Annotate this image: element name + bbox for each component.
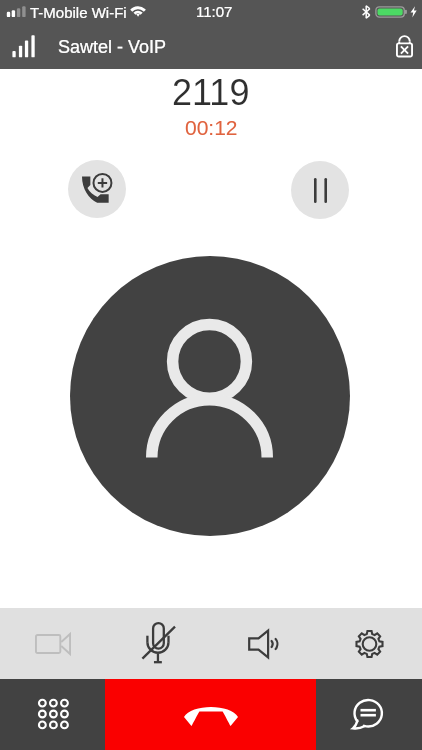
button[interactable]: Dialpad [0,679,105,750]
button[interactable]: Call not encrypted [384,26,422,66]
staticText: 11:07 [196,3,233,20]
button[interactable]: Speaker [210,608,316,679]
button[interactable]: End call [105,679,316,750]
staticText: 00:12 [185,116,238,139]
button[interactable]: Settings [316,608,422,679]
staticText: T-Mobile Wi-Fi [30,4,127,21]
button[interactable]: Video call [0,608,105,679]
button[interactable]: Messages [316,679,422,750]
button[interactable]: Add call [68,160,126,218]
button[interactable]: Hold call [291,161,349,219]
staticText: 2119 [172,72,250,112]
button[interactable]: Mute microphone [105,608,210,679]
staticText: Sawtel - VoIP [58,37,167,57]
